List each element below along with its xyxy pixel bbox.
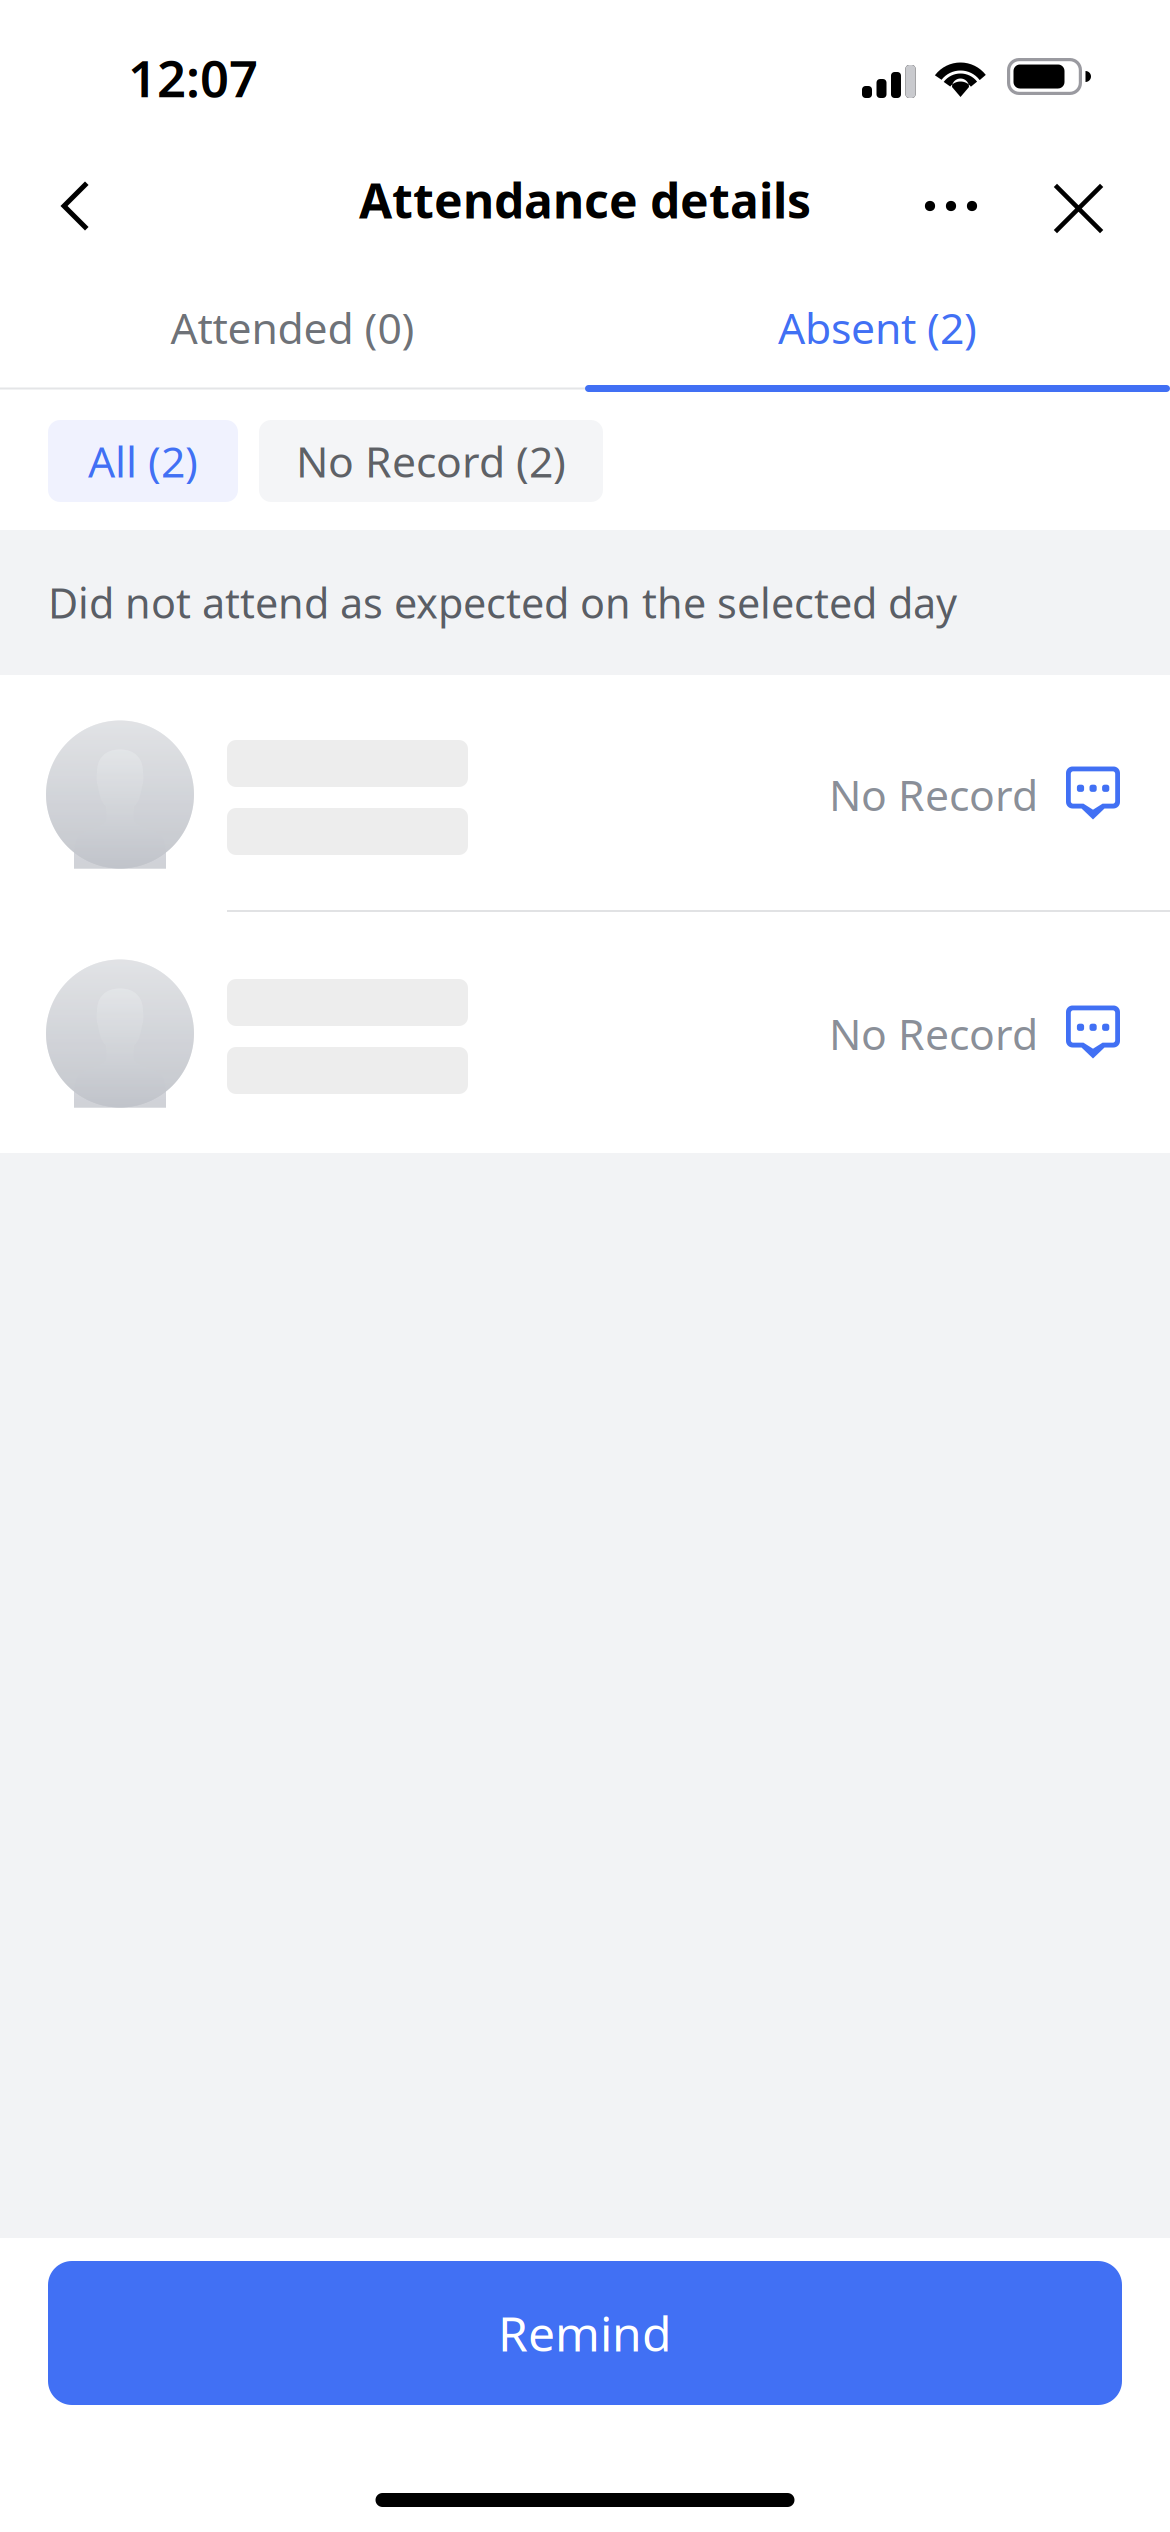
- button[interactable]: More options: [925, 130, 1047, 270]
- staticText: No Record: [829, 1005, 1038, 1062]
- staticText: No Record: [829, 766, 1038, 823]
- staticText: All (2): [88, 433, 198, 489]
- button[interactable]: Remind: [48, 2261, 1122, 2405]
- staticText: 12:07: [128, 44, 258, 111]
- staticText: Attendance details: [359, 168, 811, 232]
- staticText: Remind: [498, 2301, 672, 2365]
- button[interactable]: Close: [1047, 130, 1158, 270]
- staticText: No Record (2): [296, 433, 566, 489]
- button[interactable]: No Record: [0, 675, 1170, 914]
- button[interactable]: No Record: [0, 914, 1170, 1153]
- button[interactable]: Attended (0): [0, 270, 585, 385]
- button[interactable]: Back: [0, 130, 118, 270]
- staticText: Attended (0): [170, 299, 414, 356]
- staticText: Absent (2): [778, 299, 977, 356]
- button[interactable]: Absent (2): [585, 270, 1170, 385]
- staticText: Did not attend as expected on the select…: [48, 575, 957, 630]
- button[interactable]: No Record (2): [259, 420, 603, 502]
- button[interactable]: All (2): [48, 420, 238, 502]
